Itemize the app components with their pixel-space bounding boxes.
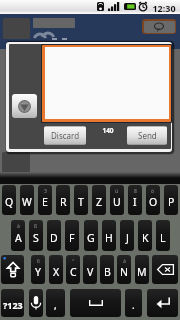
button[interactable]: ö	[146, 185, 160, 215]
staticText: S	[33, 231, 39, 245]
button[interactable]: V	[83, 255, 97, 284]
staticText: .	[132, 298, 135, 312]
staticText: 140	[102, 126, 114, 133]
button[interactable]: Shift	[1, 255, 24, 284]
button[interactable]: R	[56, 185, 70, 215]
staticText: M	[137, 265, 147, 279]
staticText: 12:30	[152, 2, 176, 12]
button[interactable]: .	[125, 289, 142, 317]
staticText: A	[15, 231, 22, 245]
staticText: C	[70, 265, 77, 279]
button[interactable]: Enter	[147, 289, 178, 317]
button[interactable]: ß	[29, 220, 43, 251]
button[interactable]: 8	[128, 185, 142, 215]
staticText: X	[53, 265, 60, 279]
button[interactable]: New message	[142, 19, 176, 34]
staticText: á	[123, 258, 126, 265]
staticText: Discard	[51, 130, 80, 141]
staticText: I	[133, 195, 137, 209]
staticText: Send	[138, 130, 157, 141]
staticText: J	[126, 231, 129, 245]
staticText: 8	[134, 188, 137, 195]
staticText: °	[72, 258, 75, 265]
staticText: N	[120, 265, 128, 279]
staticText: Y	[35, 265, 41, 279]
button[interactable]: á	[117, 255, 131, 284]
staticText: 6	[37, 258, 40, 265]
staticText: R	[60, 195, 67, 209]
staticText: U	[113, 195, 121, 209]
staticText: O	[149, 195, 158, 209]
button[interactable]: Z	[92, 185, 106, 215]
staticText: 3	[44, 188, 47, 195]
button[interactable]: L	[156, 220, 170, 251]
button[interactable]: Expand	[12, 94, 37, 118]
staticText: W	[22, 195, 32, 209]
button[interactable]: P	[164, 185, 178, 215]
button[interactable]: Discard	[44, 126, 86, 145]
staticText: B	[104, 265, 111, 279]
staticText: G	[87, 231, 95, 245]
button[interactable]: ,	[46, 289, 65, 317]
staticText: ß	[34, 223, 38, 230]
staticText: D	[50, 231, 58, 245]
button[interactable]: ä	[11, 220, 25, 251]
button[interactable]: T	[74, 185, 88, 215]
staticText: V	[87, 265, 94, 279]
button[interactable]: Q	[2, 185, 16, 215]
button[interactable]: J	[120, 220, 134, 251]
button[interactable]: 6	[31, 255, 45, 284]
button[interactable]: K	[138, 220, 152, 251]
button[interactable]: °	[66, 255, 80, 284]
staticText: F	[69, 231, 75, 245]
staticText: ,	[54, 298, 57, 312]
staticText: K	[142, 231, 149, 245]
button[interactable]: ?123	[1, 289, 24, 317]
button[interactable]: H	[102, 220, 116, 251]
button[interactable]: G	[84, 220, 98, 251]
staticText: Z	[96, 195, 103, 209]
staticText: P	[168, 195, 175, 209]
button[interactable]: ü	[110, 185, 124, 215]
button[interactable]: Voice input	[29, 289, 43, 317]
staticText: ?123	[3, 299, 23, 311]
button[interactable]: Backspace	[152, 255, 178, 284]
button[interactable]: F	[65, 220, 79, 251]
staticText: ö	[151, 188, 155, 195]
button[interactable]: Send	[127, 126, 167, 145]
staticText: L	[160, 231, 166, 245]
staticText: E	[42, 195, 48, 209]
staticText: H	[105, 231, 113, 245]
button[interactable]: W	[20, 185, 34, 215]
staticText: Q	[5, 195, 14, 209]
button[interactable]: 3	[38, 185, 52, 215]
staticText: ä	[17, 223, 20, 230]
staticText: ü	[115, 188, 119, 195]
button[interactable]: D	[47, 220, 61, 251]
button[interactable]: X	[49, 255, 63, 284]
button[interactable]: M	[135, 255, 149, 284]
button[interactable]: B	[100, 255, 114, 284]
button[interactable]: Space	[70, 289, 121, 317]
staticText: T	[78, 195, 84, 209]
